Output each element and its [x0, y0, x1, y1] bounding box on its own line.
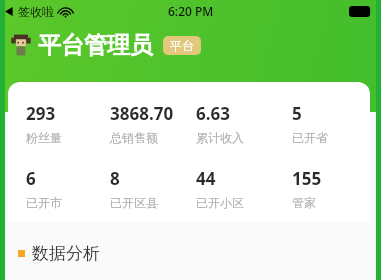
staticText: 5 [292, 102, 302, 125]
staticText: 平台 [170, 38, 194, 53]
staticText: 已开省 [292, 130, 328, 145]
staticText: 44 [196, 167, 216, 190]
other: Profile avatar [10, 32, 32, 58]
staticText: 6.63 [196, 102, 230, 125]
button[interactable]: 3868.70 [110, 102, 194, 145]
staticText: 6:20 PM [168, 3, 214, 19]
staticText: 总销售额 [110, 130, 158, 145]
staticText: 粉丝量 [26, 130, 62, 145]
button[interactable]: 6.63 [196, 102, 280, 145]
button[interactable]: 平台 [163, 36, 201, 55]
staticText: 3868.70 [110, 102, 174, 125]
staticText: 已开区县 [110, 195, 158, 210]
button[interactable]: 155 [292, 167, 370, 210]
staticText: 累计收入 [196, 130, 244, 145]
staticText: 293 [26, 102, 56, 125]
staticText: 8 [110, 167, 120, 190]
button[interactable]: 数据分析 [18, 243, 100, 264]
staticText: 签收啦 [18, 4, 54, 19]
staticText: 6 [26, 167, 36, 190]
staticText: 管家 [292, 195, 316, 210]
other: Back [5, 7, 14, 16]
staticText: 平台管理员 [38, 31, 153, 60]
staticText: 数据分析 [32, 243, 100, 264]
other: Battery [349, 6, 373, 17]
staticText: 已开市 [26, 195, 62, 210]
other: WiFi [59, 7, 72, 17]
button[interactable]: 8 [110, 167, 194, 210]
button[interactable]: 5 [292, 102, 370, 145]
button[interactable]: 6 [26, 167, 110, 210]
button[interactable]: 293 [26, 102, 110, 145]
staticText: 已开小区 [196, 195, 244, 210]
staticText: 155 [292, 167, 322, 190]
button[interactable]: 44 [196, 167, 280, 210]
